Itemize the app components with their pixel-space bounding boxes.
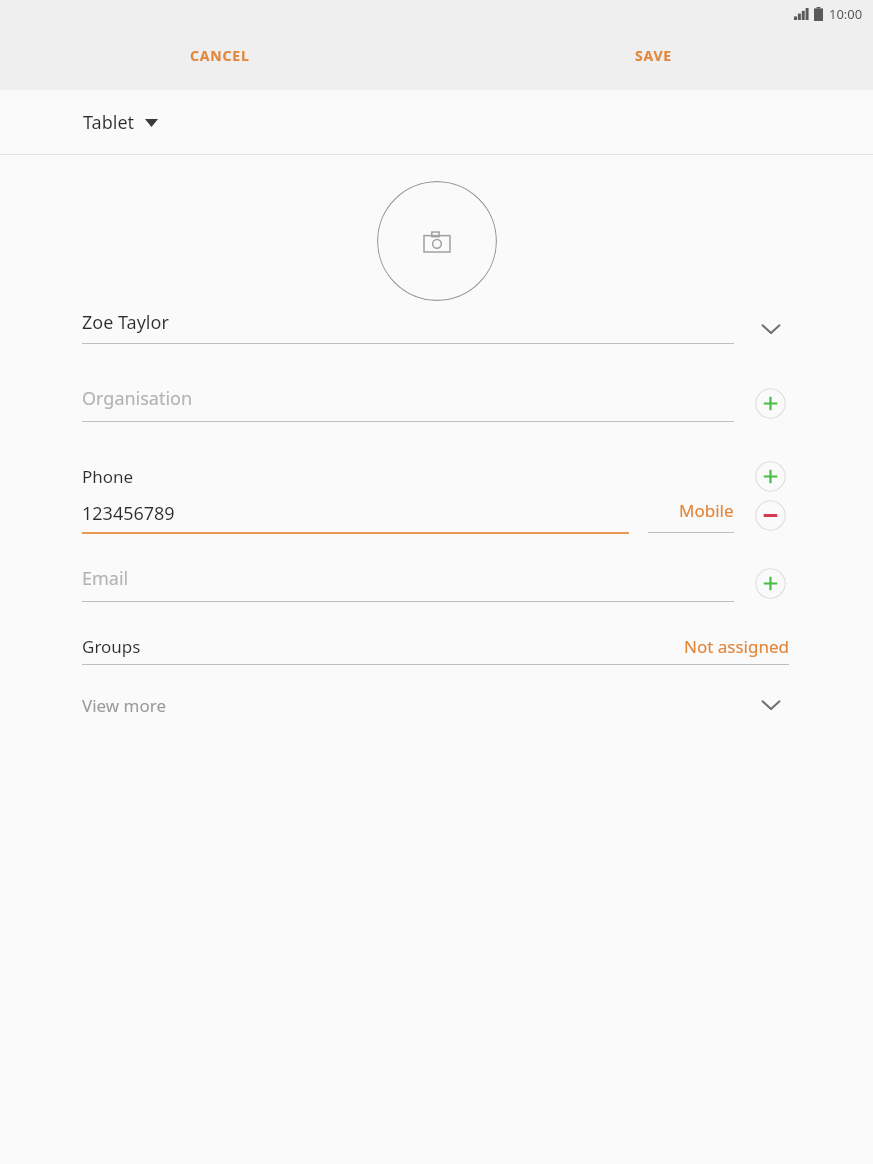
button[interactable]: Tablet: [70, 102, 171, 143]
staticText: Zoe Taylor: [82, 310, 169, 335]
button[interactable]: View more: [82, 685, 789, 725]
button[interactable]: Organisation: [82, 386, 734, 422]
staticText: Mobile: [679, 499, 734, 522]
button[interactable]: Zoe Taylor: [82, 310, 734, 346]
staticText: 10:00: [829, 5, 863, 23]
staticText: Groups: [82, 635, 141, 658]
staticText: Phone: [82, 465, 134, 488]
button[interactable]: Remove phone: [755, 500, 786, 531]
staticText: Email: [82, 566, 129, 591]
button[interactable]: SAVE: [613, 40, 694, 71]
button[interactable]: CANCEL: [168, 40, 272, 71]
button[interactable]: Expand name: [751, 309, 791, 349]
staticText: 123456789: [82, 501, 175, 526]
staticText: Tablet: [83, 110, 135, 135]
button[interactable]: Add email: [755, 568, 786, 599]
staticText: Not assigned: [684, 635, 789, 658]
button[interactable]: View more: [751, 685, 791, 725]
staticText: SAVE: [635, 46, 672, 65]
staticText: CANCEL: [190, 46, 250, 65]
button[interactable]: 123456789: [82, 501, 629, 533]
button[interactable]: Add phone: [755, 461, 786, 492]
staticText: Organisation: [82, 386, 193, 411]
button[interactable]: Groups: [82, 626, 789, 666]
button[interactable]: Email: [82, 566, 734, 602]
button[interactable]: Add organisation: [755, 388, 786, 419]
button[interactable]: Add photo: [377, 181, 497, 301]
button[interactable]: Mobile: [648, 499, 734, 531]
staticText: View more: [82, 694, 167, 717]
